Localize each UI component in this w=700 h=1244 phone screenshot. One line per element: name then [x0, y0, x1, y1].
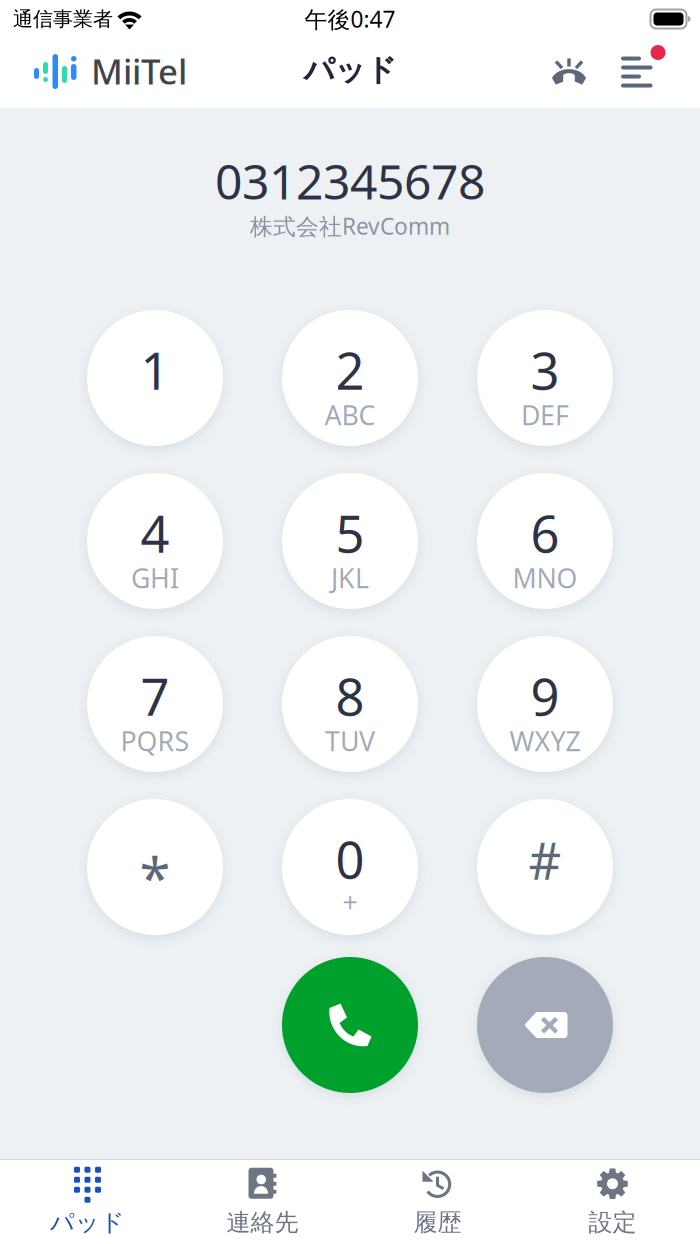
- button[interactable]: #: [477, 799, 613, 935]
- staticText: 履歴: [413, 1208, 461, 1237]
- staticText: 午後0:47: [304, 4, 395, 34]
- staticText: DEF: [521, 397, 569, 433]
- button[interactable]: 5: [282, 473, 418, 609]
- button[interactable]: 削除: [477, 957, 613, 1093]
- staticText: 3: [530, 336, 559, 404]
- button[interactable]: 0: [282, 799, 418, 935]
- staticText: 4: [140, 499, 169, 567]
- staticText: 連絡先: [226, 1208, 298, 1237]
- staticText: 5: [335, 499, 364, 567]
- button[interactable]: 6: [477, 473, 613, 609]
- button[interactable]: 8: [282, 636, 418, 772]
- staticText: TUV: [325, 723, 375, 759]
- staticText: GHI: [131, 560, 179, 596]
- staticText: 9: [530, 662, 559, 730]
- staticText: *: [139, 840, 170, 914]
- staticText: パッド: [303, 51, 396, 89]
- staticText: 6: [530, 499, 559, 567]
- staticText: 8: [335, 662, 364, 730]
- button[interactable]: *: [87, 799, 223, 935]
- staticText: 0312345678: [215, 149, 485, 213]
- button[interactable]: 9: [477, 636, 613, 772]
- staticText: #: [528, 826, 561, 894]
- button[interactable]: 2: [282, 310, 418, 446]
- staticText: MiiTel: [91, 48, 187, 94]
- staticText: JKL: [331, 560, 369, 596]
- button[interactable]: メニュー: [621, 52, 666, 94]
- button[interactable]: 設定: [525, 1158, 700, 1244]
- button[interactable]: 4: [87, 473, 223, 609]
- staticText: 通信事業者: [13, 7, 113, 31]
- button[interactable]: 着信履歴: [552, 59, 586, 87]
- button[interactable]: 発信: [282, 957, 418, 1093]
- staticText: パッド: [50, 1208, 125, 1237]
- staticText: 0: [335, 825, 364, 893]
- staticText: +: [342, 884, 357, 920]
- staticText: 2: [335, 336, 364, 404]
- staticText: ABC: [324, 397, 375, 433]
- button[interactable]: 7: [87, 636, 223, 772]
- staticText: 1: [140, 336, 169, 404]
- button[interactable]: 1: [87, 310, 223, 446]
- button[interactable]: 連絡先: [175, 1158, 350, 1244]
- staticText: 株式会社RevComm: [250, 211, 450, 241]
- button[interactable]: パッド: [0, 1158, 175, 1244]
- button[interactable]: 履歴: [350, 1158, 525, 1244]
- staticText: 7: [140, 662, 169, 730]
- staticText: PQRS: [120, 723, 189, 759]
- staticText: MNO: [512, 560, 577, 596]
- staticText: 設定: [588, 1208, 636, 1237]
- button[interactable]: 3: [477, 310, 613, 446]
- staticText: WXYZ: [509, 723, 580, 759]
